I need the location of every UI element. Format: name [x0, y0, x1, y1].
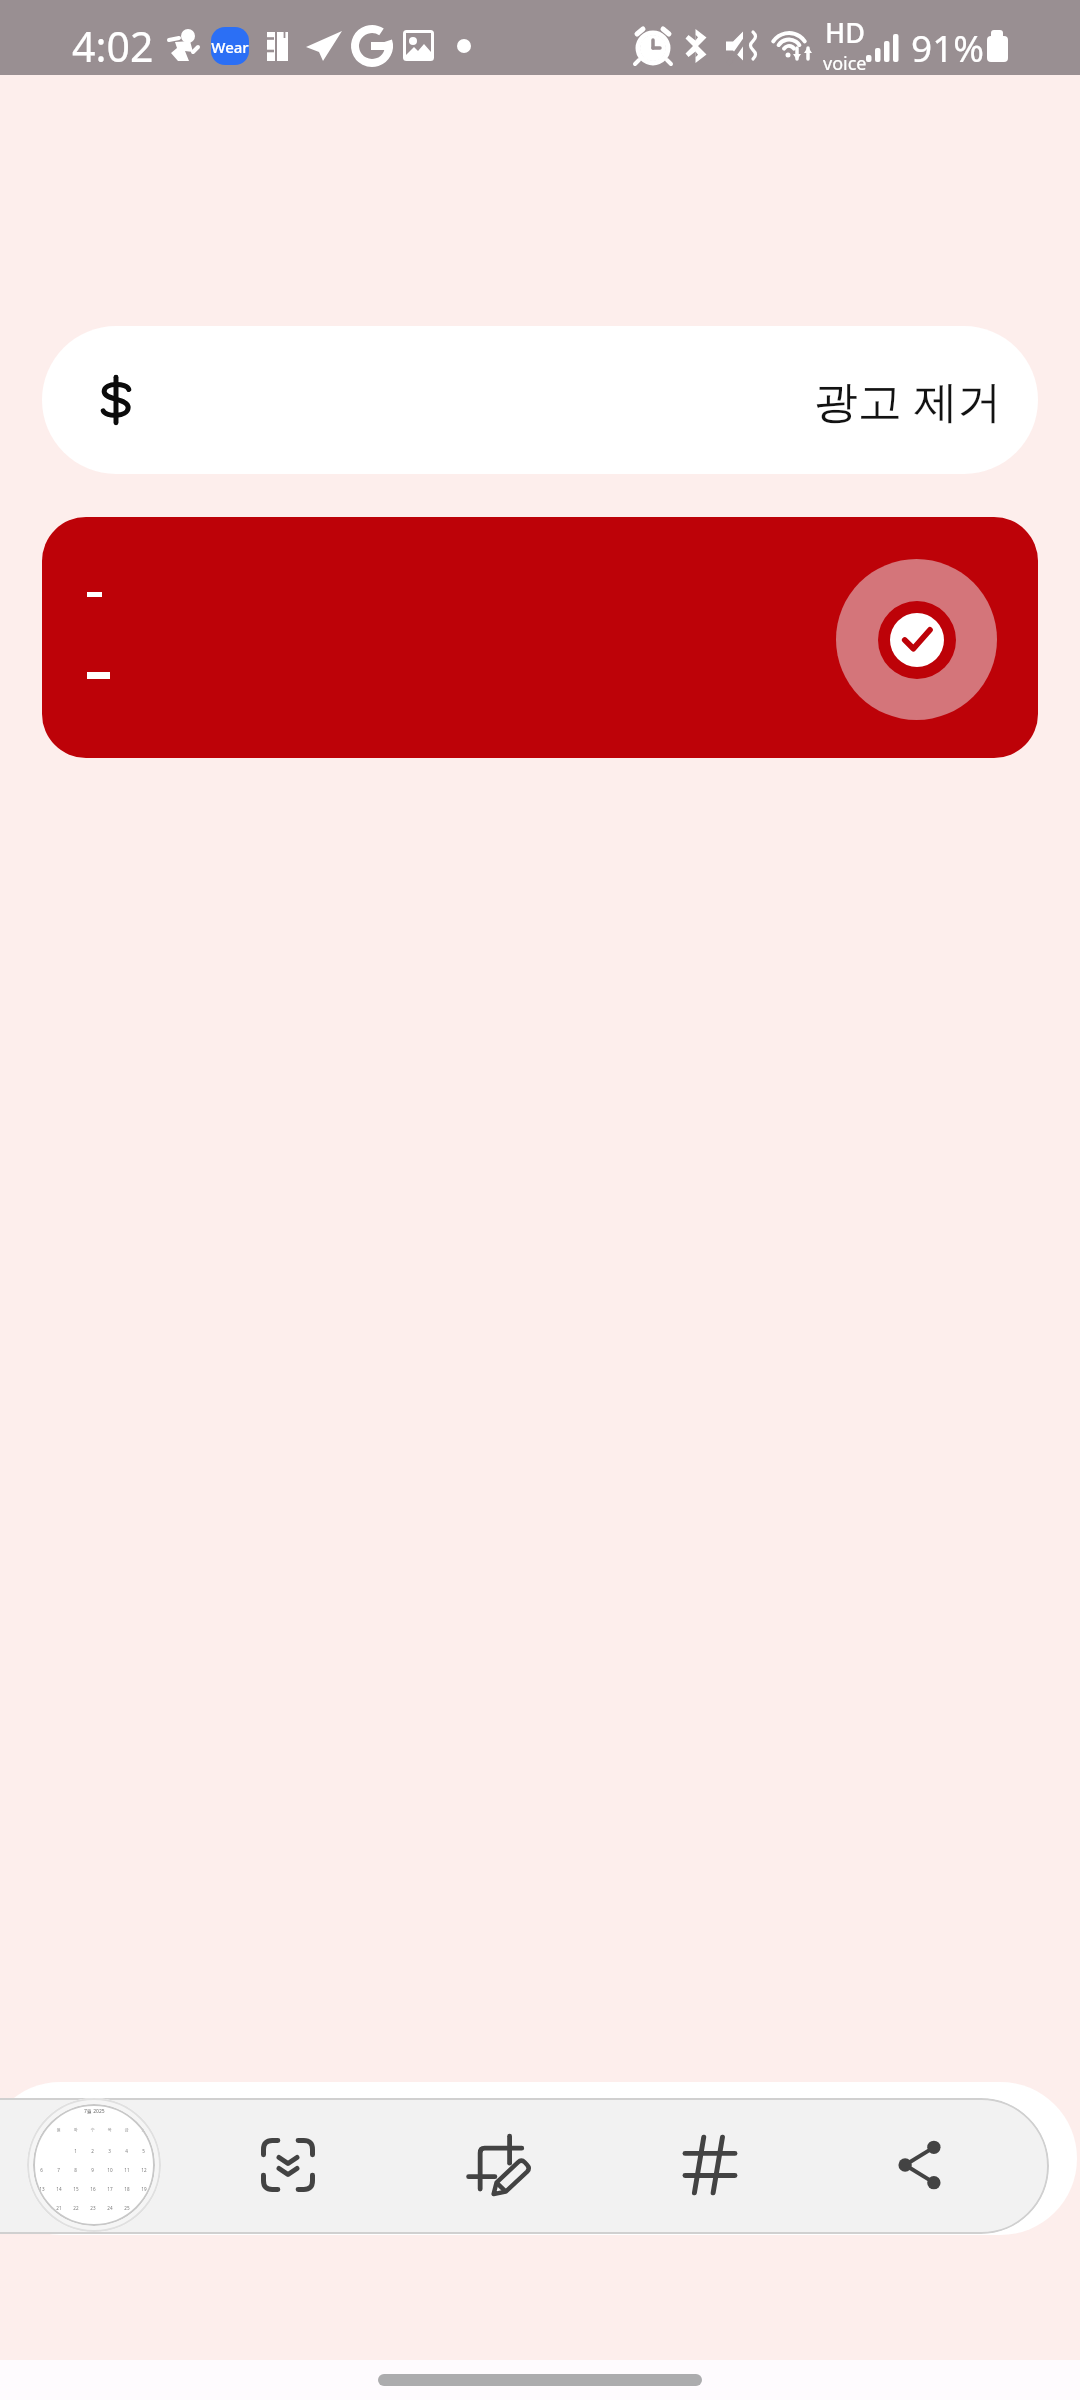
staticText: 월: [56, 2127, 61, 2132]
staticText: 7: [57, 2167, 60, 2173]
staticText: 금: [124, 2127, 129, 2132]
staticText: 13: [39, 2186, 45, 2192]
button[interactable]: Tags: [651, 2106, 769, 2224]
staticText: 12: [141, 2167, 147, 2173]
staticText: 21: [56, 2205, 62, 2211]
staticText: 7월 2025: [84, 2108, 105, 2115]
button[interactable]: New note: [441, 2106, 559, 2224]
staticText: 1: [74, 2148, 77, 2154]
button[interactable]: Confirm: [42, 517, 1038, 758]
button[interactable]: Calendar: [27, 2098, 161, 2232]
staticText: HD: [825, 14, 865, 51]
staticText: 16: [90, 2186, 96, 2192]
staticText: 14: [56, 2186, 62, 2192]
staticText: 23: [90, 2205, 96, 2211]
staticText: 20: [39, 2205, 45, 2211]
staticText: 4: [125, 2148, 128, 2154]
staticText: 광고 제거: [814, 370, 1002, 430]
staticText: 일: [39, 2127, 44, 2132]
staticText: 10: [107, 2167, 113, 2173]
staticText: 22: [73, 2205, 79, 2211]
staticText: 목: [107, 2127, 112, 2132]
staticText: 토: [141, 2127, 146, 2132]
button[interactable]: Share: [862, 2106, 980, 2224]
staticText: 91%: [911, 22, 985, 72]
staticText: 11: [124, 2167, 130, 2173]
staticText: 6: [40, 2167, 43, 2173]
staticText: 8: [74, 2167, 77, 2173]
staticText: 25: [124, 2205, 130, 2211]
staticText: 수: [90, 2127, 95, 2132]
staticText: 15: [73, 2186, 79, 2192]
staticText: 19: [141, 2186, 147, 2192]
button[interactable]: 광고 제거: [42, 326, 1038, 474]
staticText: 18: [124, 2186, 130, 2192]
button[interactable]: Scan: [229, 2106, 347, 2224]
staticText: 9: [91, 2167, 94, 2173]
staticText: 2: [91, 2148, 94, 2154]
button[interactable]: Confirm: [836, 559, 997, 720]
staticText: voice: [823, 51, 867, 76]
staticText: Wear: [211, 37, 249, 57]
staticText: 3: [108, 2148, 111, 2154]
staticText: 17: [107, 2186, 113, 2192]
staticText: 5: [142, 2148, 145, 2154]
staticText: 화: [73, 2127, 78, 2132]
staticText: 4:02: [72, 18, 154, 74]
staticText: 24: [107, 2205, 113, 2211]
